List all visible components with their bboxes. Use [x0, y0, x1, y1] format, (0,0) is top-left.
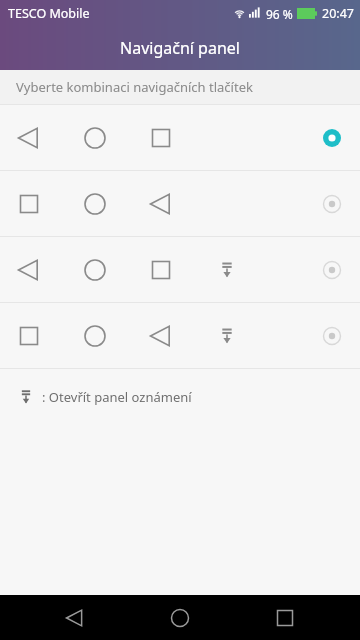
button[interactable] [0, 237, 360, 302]
button[interactable]: Back [45, 595, 105, 640]
button[interactable] [0, 105, 360, 170]
button[interactable]: Recent apps [255, 595, 315, 640]
staticText: Vyberte kombinaci navigačních tlačítek [16, 78, 253, 96]
button[interactable] [0, 171, 360, 236]
staticText: 96 % [266, 6, 293, 22]
staticText: 20:47 [322, 5, 354, 22]
staticText: Navigační panel [120, 37, 240, 59]
staticText: TESCO Mobile [8, 5, 90, 22]
button[interactable] [0, 303, 360, 368]
staticText: : Otevřít panel oznámení [42, 388, 192, 406]
button[interactable]: Home [150, 595, 210, 640]
